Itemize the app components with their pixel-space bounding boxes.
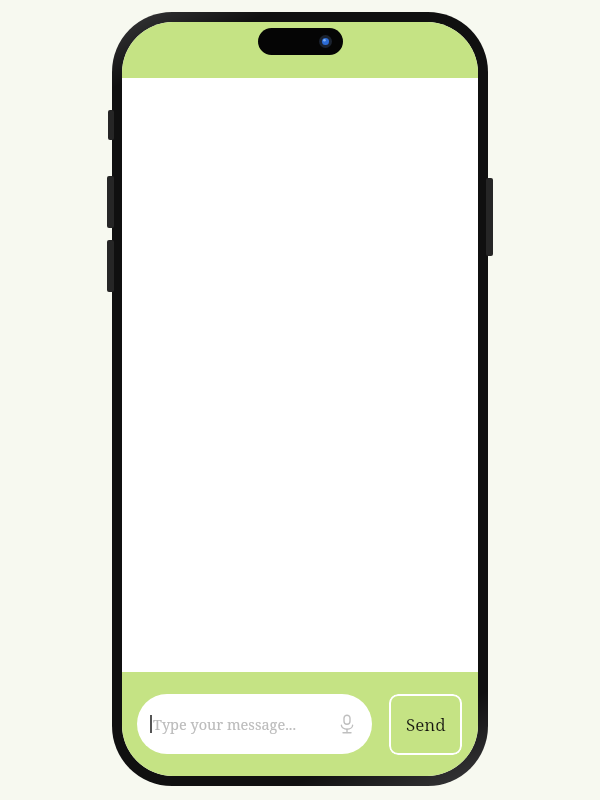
button[interactable]: Voice input [334, 711, 360, 737]
staticText: Type your message... [153, 714, 334, 734]
button[interactable]: Type your message... [137, 694, 372, 754]
staticText: Send [406, 713, 446, 736]
button[interactable]: Send [389, 694, 462, 755]
